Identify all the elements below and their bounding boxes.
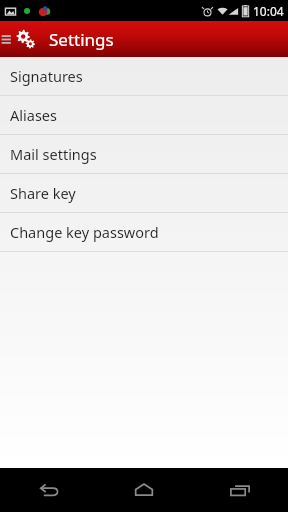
staticText: Settings	[49, 28, 114, 51]
staticText: Change key password	[10, 222, 159, 242]
staticText: 10:04	[253, 3, 284, 19]
staticText: Mail settings	[10, 144, 97, 164]
button[interactable]: Share key	[0, 174, 288, 213]
button[interactable]: Signatures	[0, 57, 288, 96]
staticText: Aliases	[10, 105, 57, 125]
button[interactable]: Aliases	[0, 96, 288, 135]
button[interactable]: Back	[0, 468, 96, 512]
button[interactable]: Mail settings	[0, 135, 288, 174]
staticText: Share key	[10, 183, 76, 203]
button[interactable]: Change key password	[0, 213, 288, 252]
button[interactable]: Navigate up	[0, 21, 40, 57]
button[interactable]: Home	[96, 468, 192, 512]
staticText: Signatures	[10, 66, 83, 86]
button[interactable]: Recent apps	[192, 468, 288, 512]
